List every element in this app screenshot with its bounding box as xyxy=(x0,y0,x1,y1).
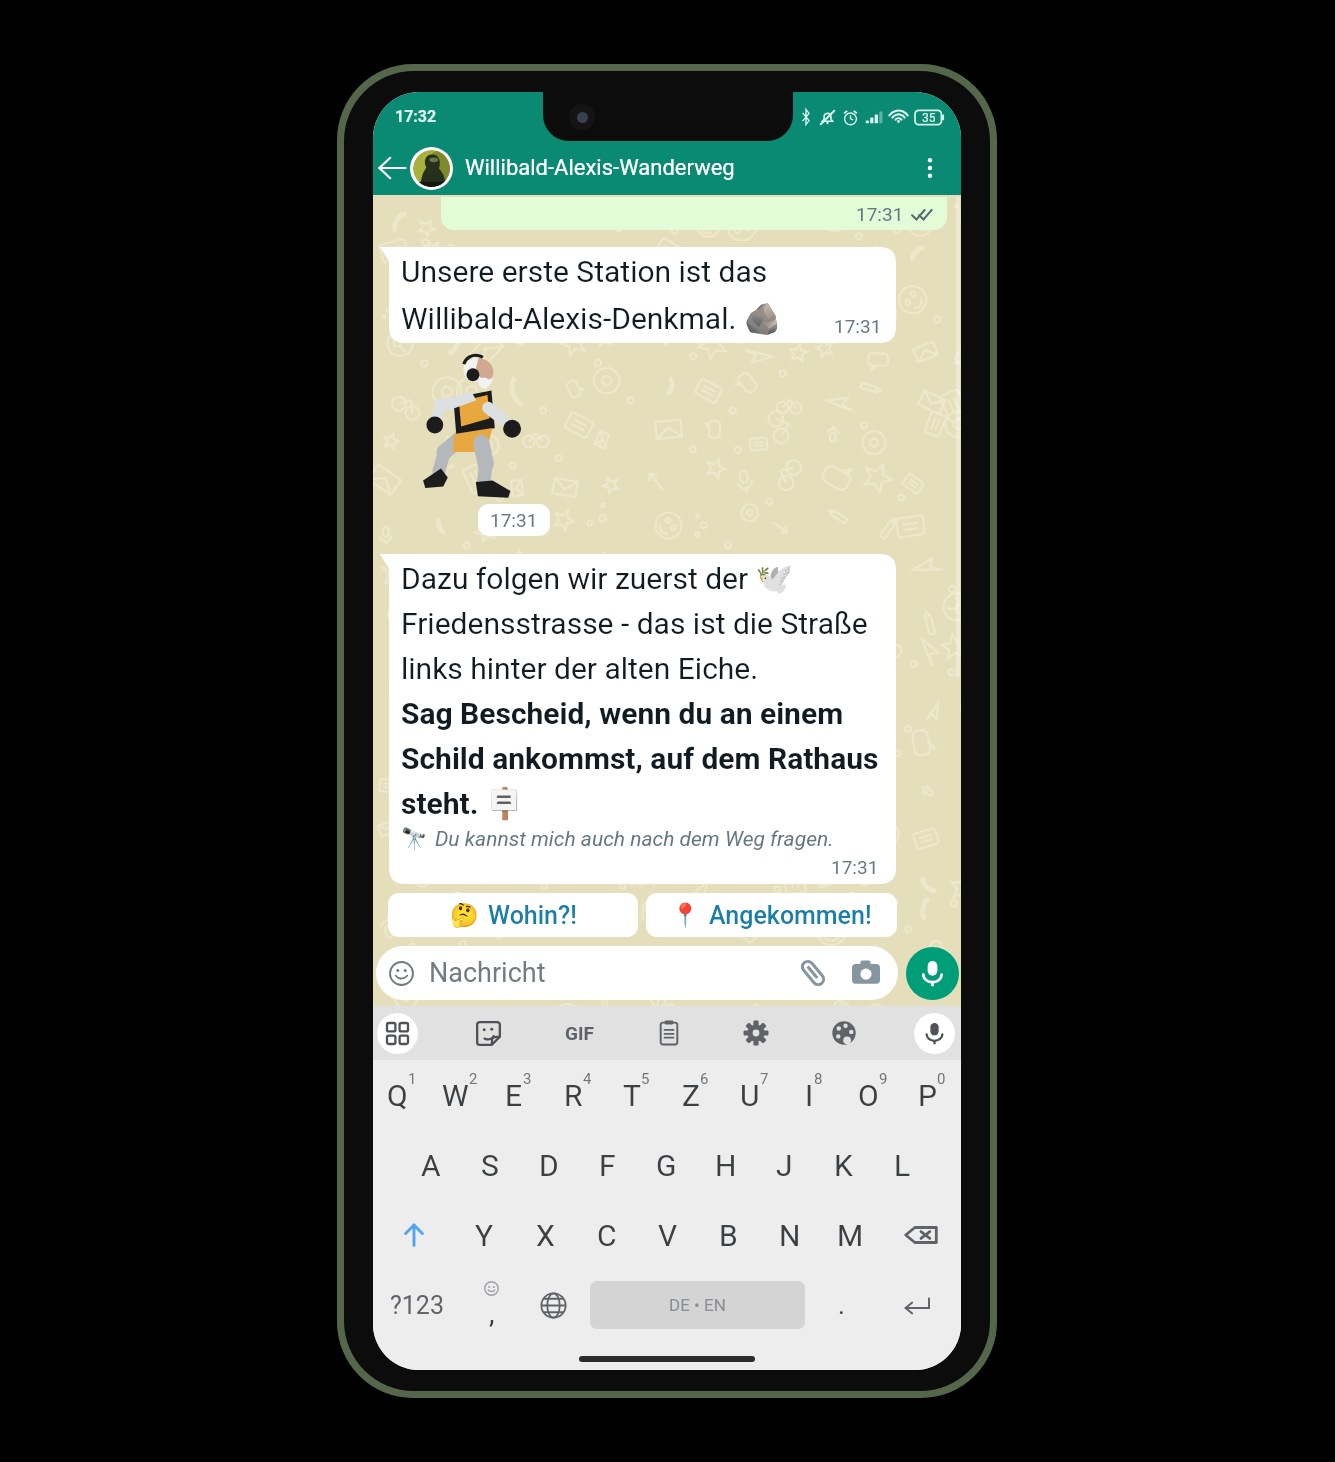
button[interactable]: W xyxy=(431,1060,489,1130)
staticText: N xyxy=(779,1218,801,1253)
staticText: X xyxy=(536,1218,555,1253)
staticText: 4 xyxy=(583,1070,592,1088)
button[interactable]: Profile picture xyxy=(410,147,453,190)
staticText: Dazu folgen wir zuerst der 🕊 Friedensstr… xyxy=(401,561,879,821)
staticText: M xyxy=(837,1218,864,1253)
staticText: R xyxy=(564,1078,583,1113)
button[interactable]: Camera xyxy=(852,959,880,987)
button[interactable]: O xyxy=(843,1060,902,1130)
staticText: DE • EN xyxy=(669,1295,726,1315)
button[interactable]: F xyxy=(578,1130,637,1200)
button[interactable]: Backspace xyxy=(881,1200,961,1270)
staticText: 17:32 xyxy=(395,107,437,126)
button[interactable]: Voice input xyxy=(914,1013,955,1054)
button[interactable]: Apps xyxy=(377,1013,418,1054)
staticText: Wohin?! xyxy=(488,901,577,930)
staticText: Unsere erste Station ist das Willibald-A… xyxy=(401,254,782,337)
button[interactable]: Voice message xyxy=(906,947,959,1000)
staticText: 8 xyxy=(814,1070,823,1088)
staticText: O xyxy=(858,1078,879,1113)
button[interactable]: Clipboard xyxy=(652,1016,686,1050)
staticText: GIF xyxy=(565,1022,594,1044)
button[interactable]: Q xyxy=(373,1060,431,1130)
button[interactable]: Stickers xyxy=(471,1016,505,1050)
staticText: P xyxy=(918,1078,937,1113)
staticText: ?123 xyxy=(390,1291,444,1320)
staticText: , xyxy=(489,1297,495,1330)
staticText: E xyxy=(505,1078,523,1113)
button[interactable]: V xyxy=(637,1200,698,1270)
button[interactable]: A xyxy=(401,1130,460,1200)
button[interactable]: E xyxy=(489,1060,548,1130)
button[interactable]: M xyxy=(820,1200,881,1270)
staticText: T xyxy=(623,1078,641,1113)
staticText: Willibald-Alexis-Wanderweg xyxy=(465,155,735,181)
button[interactable]: Emoji xyxy=(389,961,414,986)
staticText: 35 xyxy=(922,111,936,125)
button[interactable]: Settings xyxy=(739,1016,773,1050)
staticText: Q xyxy=(387,1078,408,1113)
button[interactable]: . xyxy=(810,1270,873,1340)
button[interactable]: More options xyxy=(913,151,947,185)
staticText: 2 xyxy=(469,1070,478,1088)
staticText: Angekommen! xyxy=(709,901,872,930)
button[interactable]: P xyxy=(902,1060,961,1130)
staticText: U xyxy=(740,1078,760,1113)
staticText: 17:31 xyxy=(856,203,904,225)
staticText: Nachricht xyxy=(429,957,546,989)
staticText: A xyxy=(421,1148,441,1183)
staticText: H xyxy=(715,1148,737,1183)
button[interactable]: ?123 xyxy=(373,1270,460,1340)
button[interactable]: R xyxy=(548,1060,607,1130)
button[interactable]: T xyxy=(607,1060,666,1130)
staticText: 17:31 xyxy=(831,856,879,878)
button[interactable]: GIF xyxy=(559,1013,599,1053)
staticText: 3 xyxy=(523,1070,532,1088)
staticText: 17:31 xyxy=(490,509,538,531)
button[interactable]: D xyxy=(519,1130,578,1200)
button[interactable]: Y xyxy=(454,1200,515,1270)
staticText: 6 xyxy=(700,1070,709,1088)
button[interactable]: J xyxy=(755,1130,814,1200)
button[interactable]: B xyxy=(698,1200,759,1270)
staticText: . xyxy=(838,1290,845,1320)
staticText: 📍 xyxy=(671,902,700,929)
button[interactable]: Enter xyxy=(873,1270,961,1340)
staticText: D xyxy=(539,1148,559,1183)
button[interactable]: X xyxy=(515,1200,576,1270)
staticText: 17:31 xyxy=(834,315,882,337)
staticText: I xyxy=(805,1078,814,1113)
button[interactable]: K xyxy=(814,1130,873,1200)
staticText: Y xyxy=(475,1218,494,1253)
button[interactable]: Theme xyxy=(827,1016,861,1050)
staticText: 5 xyxy=(641,1070,650,1088)
button[interactable]: U xyxy=(725,1060,784,1130)
button[interactable]: Attach xyxy=(798,958,828,988)
button[interactable]: G xyxy=(637,1130,696,1200)
button[interactable]: Comma, emoji xyxy=(460,1270,522,1340)
button[interactable]: Shift xyxy=(373,1200,454,1270)
button[interactable]: 📍 xyxy=(646,893,897,937)
button[interactable]: Back xyxy=(374,150,410,186)
button[interactable]: I xyxy=(784,1060,843,1130)
staticText: G xyxy=(656,1148,677,1183)
button[interactable]: S xyxy=(460,1130,519,1200)
staticText: Du kannst mich auch nach dem Weg fragen. xyxy=(435,827,834,852)
staticText: F xyxy=(599,1148,616,1183)
staticText: W xyxy=(442,1078,469,1113)
staticText: Z xyxy=(682,1078,700,1113)
button[interactable]: N xyxy=(759,1200,820,1270)
button[interactable]: DE • EN xyxy=(590,1281,805,1329)
button[interactable]: Z xyxy=(666,1060,725,1130)
staticText: 0 xyxy=(937,1070,946,1088)
button[interactable]: C xyxy=(576,1200,637,1270)
staticText: S xyxy=(481,1148,499,1183)
button[interactable]: 🤔 xyxy=(388,893,638,937)
staticText: 🤔 xyxy=(450,902,479,929)
button[interactable]: H xyxy=(696,1130,755,1200)
staticText: J xyxy=(776,1148,793,1183)
button[interactable]: Emoji xyxy=(376,946,898,1000)
button[interactable]: L xyxy=(873,1130,932,1200)
button[interactable]: Language xyxy=(522,1270,585,1340)
staticText: 9 xyxy=(879,1070,888,1088)
